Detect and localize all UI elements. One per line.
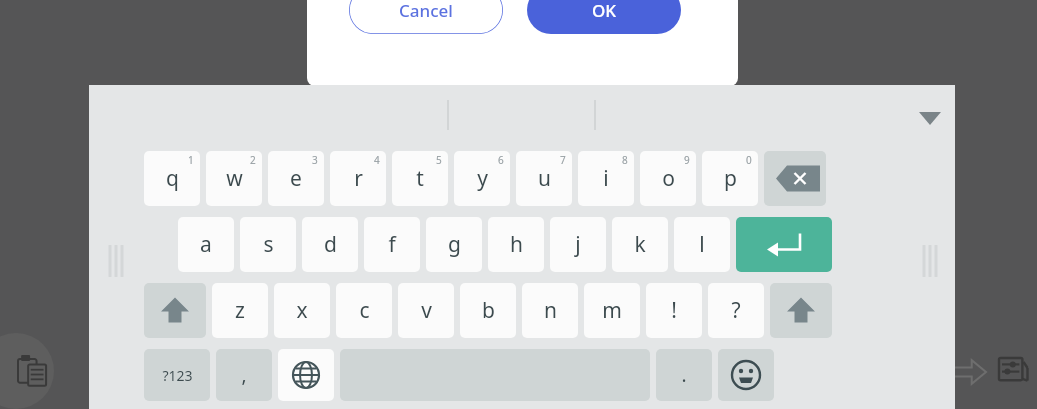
staticText: 7 [560, 153, 566, 167]
button[interactable]: h [488, 217, 544, 272]
button[interactable]: d [302, 217, 358, 272]
staticText: 8 [622, 153, 628, 167]
button[interactable]: e [268, 151, 324, 206]
staticText: r [354, 164, 363, 193]
button[interactable]: n [522, 283, 578, 338]
staticText: Cancel [399, 0, 453, 22]
staticText: 0 [746, 153, 752, 167]
staticText: q [166, 164, 179, 193]
staticText: ! [671, 296, 677, 325]
button[interactable]: v [398, 283, 454, 338]
button[interactable]: s [240, 217, 296, 272]
staticText: OK [592, 0, 617, 22]
button[interactable]: a [178, 217, 234, 272]
button[interactable]: ?123 [144, 349, 210, 401]
staticText: y [477, 164, 488, 193]
button[interactable]: ? [708, 283, 764, 338]
button[interactable]: f [364, 217, 420, 272]
button[interactable]: k [612, 217, 668, 272]
button[interactable]: g [426, 217, 482, 272]
button[interactable]: Cancel [349, 0, 503, 34]
staticText: s [263, 230, 274, 259]
button[interactable]: l [674, 217, 730, 272]
button[interactable]: x [274, 283, 330, 338]
button[interactable]: r [330, 151, 386, 206]
staticText: ?123 [162, 366, 193, 385]
staticText: e [290, 164, 302, 193]
button[interactable]: u [516, 151, 572, 206]
button[interactable]: Shift [144, 283, 206, 338]
button[interactable]: Clipboard [0, 333, 54, 409]
staticText: . [681, 362, 687, 388]
staticText: 4 [374, 153, 380, 167]
staticText: f [388, 230, 396, 259]
staticText: p [724, 164, 737, 193]
button[interactable]: b [460, 283, 516, 338]
staticText: u [538, 164, 551, 193]
staticText: n [544, 296, 557, 325]
staticText: j [575, 230, 581, 259]
button[interactable]: Enter [736, 217, 832, 272]
staticText: 9 [684, 153, 690, 167]
button[interactable]: t [392, 151, 448, 206]
button[interactable]: OK [527, 0, 681, 34]
staticText: c [359, 296, 370, 325]
staticText: 3 [312, 153, 318, 167]
staticText: a [200, 230, 212, 259]
staticText: g [448, 230, 461, 259]
button[interactable]: Shift [770, 283, 832, 338]
button[interactable]: p [702, 151, 758, 206]
staticText: 1 [188, 153, 194, 167]
staticText: w [226, 164, 243, 193]
button[interactable]: o [640, 151, 696, 206]
button[interactable]: m [584, 283, 640, 338]
staticText: 2 [250, 153, 256, 167]
staticText: i [603, 164, 609, 193]
staticText: v [421, 296, 432, 325]
button[interactable]: i [578, 151, 634, 206]
staticText: z [235, 296, 245, 325]
staticText: m [602, 296, 622, 325]
button[interactable]: . [656, 349, 712, 401]
staticText: x [296, 296, 308, 325]
button[interactable]: Hide keyboard [915, 103, 945, 133]
staticText: b [482, 296, 495, 325]
staticText: k [634, 230, 646, 259]
staticText: ? [731, 296, 741, 325]
button[interactable]: Settings [993, 350, 1035, 392]
button[interactable]: j [550, 217, 606, 272]
button[interactable]: y [454, 151, 510, 206]
button[interactable]: Change language [278, 349, 334, 401]
staticText: l [699, 230, 705, 259]
staticText: 5 [436, 153, 442, 167]
staticText: , [241, 362, 247, 388]
button[interactable]: , [216, 349, 272, 401]
button[interactable]: w [206, 151, 262, 206]
button[interactable]: Emoji [718, 349, 774, 401]
staticText: d [324, 230, 337, 259]
button[interactable]: z [212, 283, 268, 338]
staticText: t [416, 164, 424, 193]
button[interactable]: Backspace [764, 151, 826, 206]
staticText: 6 [498, 153, 504, 167]
button[interactable]: q [144, 151, 200, 206]
staticText: h [510, 230, 523, 259]
button[interactable]: ! [646, 283, 702, 338]
button[interactable]: c [336, 283, 392, 338]
staticText: o [662, 164, 675, 193]
